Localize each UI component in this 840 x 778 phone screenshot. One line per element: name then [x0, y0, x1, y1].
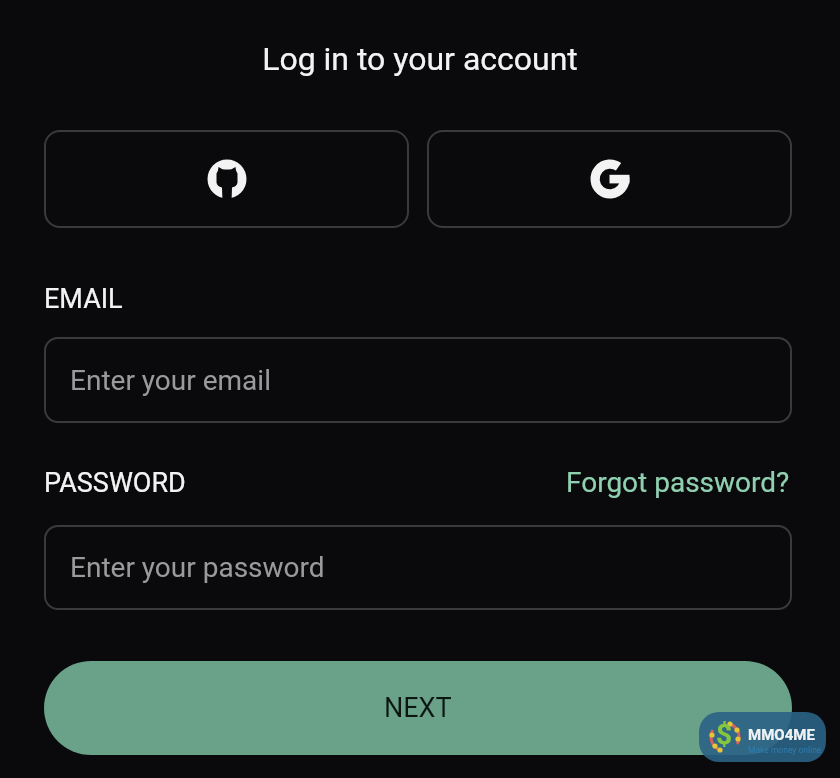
button[interactable]: Enter your password [44, 525, 792, 610]
staticText: Make money online [748, 745, 822, 755]
staticText: EMAIL [44, 283, 123, 315]
staticText: Enter your password [70, 551, 325, 584]
staticText: Enter your email [70, 364, 271, 397]
staticText: MMO4ME [748, 726, 815, 744]
button[interactable] [427, 130, 792, 228]
staticText: PASSWORD [44, 467, 186, 499]
staticText: $ [716, 718, 733, 751]
button[interactable]: NEXT [44, 661, 792, 755]
button[interactable] [44, 130, 409, 228]
staticText: NEXT [384, 692, 452, 724]
button[interactable]: Enter your email [44, 337, 792, 423]
button[interactable]: Forgot password? [566, 466, 790, 499]
staticText: Log in to your account [0, 40, 840, 78]
